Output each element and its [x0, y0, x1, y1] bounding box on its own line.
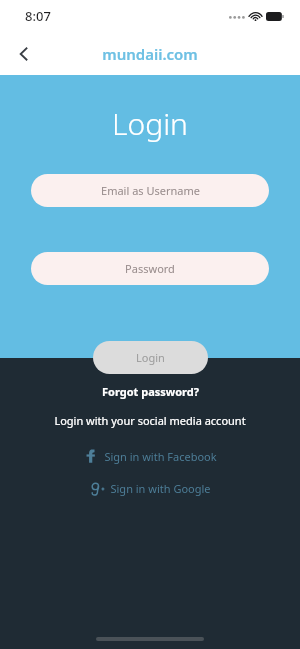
button[interactable]: Forgot password?: [102, 384, 199, 399]
staticText: Sign in with Facebook: [104, 449, 217, 464]
button[interactable]: Login: [93, 341, 208, 374]
staticText: Login: [112, 103, 188, 144]
staticText: mundaii.com: [102, 44, 198, 64]
staticText: Login: [136, 350, 165, 365]
button[interactable]: Back: [8, 38, 40, 70]
staticText: Password: [125, 261, 175, 276]
staticText: Sign in with Google: [110, 481, 211, 496]
button[interactable]: Sign in with Facebook: [77, 446, 223, 466]
button[interactable]: Password: [31, 252, 269, 285]
button[interactable]: Sign in with Google: [83, 478, 217, 498]
staticText: Login with your social media account: [54, 413, 246, 428]
staticText: Email as Username: [101, 183, 200, 198]
button[interactable]: Email as Username: [31, 174, 269, 207]
staticText: 8:07: [25, 7, 51, 25]
